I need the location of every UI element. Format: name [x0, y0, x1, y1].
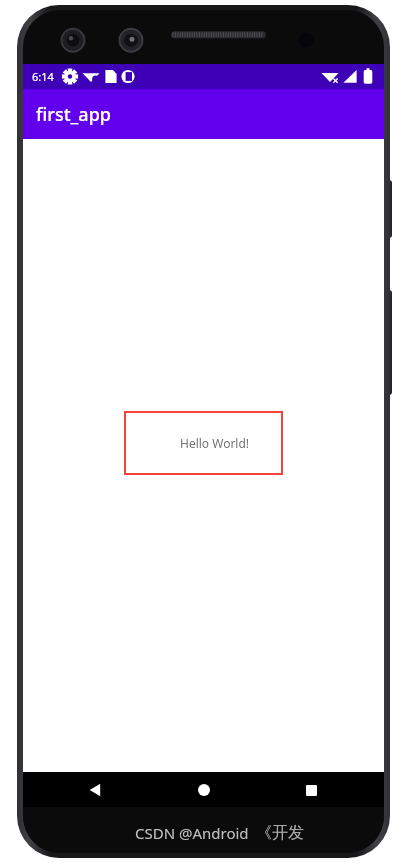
button[interactable]: Back — [78, 772, 114, 808]
staticText: 6:14 — [32, 69, 54, 84]
button[interactable]: Home — [186, 772, 222, 808]
staticText: first_app — [36, 102, 111, 127]
staticText: CSDN @Android — [135, 823, 249, 843]
staticText: 《开发 — [256, 823, 304, 843]
button[interactable]: Recent apps — [293, 772, 329, 808]
staticText: Hello World! — [180, 435, 250, 451]
button[interactable]: Hello World! — [124, 411, 283, 475]
